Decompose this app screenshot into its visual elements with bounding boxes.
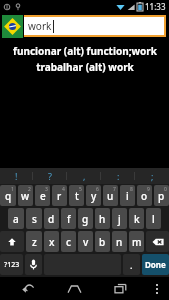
staticText: p (158, 189, 165, 203)
staticText: o (141, 189, 148, 203)
staticText: s (32, 212, 37, 226)
button[interactable]: ? (33, 168, 67, 184)
button[interactable]: q (0, 185, 16, 206)
staticText: c (66, 235, 71, 249)
staticText: 9 (147, 186, 150, 193)
staticText: ?123 (4, 260, 20, 270)
button[interactable]: b (95, 231, 110, 252)
button[interactable]: z (26, 231, 42, 252)
button[interactable]: ! (0, 168, 33, 184)
button[interactable]: Home (60, 277, 89, 300)
staticText: 8 (130, 186, 133, 193)
button[interactable]: v (78, 231, 93, 252)
staticText: . (130, 259, 133, 271)
staticText: a (13, 212, 19, 226)
staticText: j (118, 212, 121, 226)
staticText: 7 (113, 186, 116, 193)
button[interactable]: , (67, 168, 101, 184)
button[interactable]: e (35, 185, 50, 206)
staticText: Done (145, 259, 166, 270)
staticText: g (82, 212, 89, 226)
staticText: 4 (62, 186, 65, 193)
staticText: y (91, 189, 97, 203)
staticText: ! (15, 170, 18, 182)
staticText: d (48, 212, 55, 226)
staticText: 2 (28, 186, 31, 193)
staticText: w (21, 189, 30, 203)
button[interactable]: Select language (0, 14, 24, 38)
button[interactable]: Recent apps (106, 277, 135, 300)
button[interactable]: o (137, 185, 152, 206)
staticText: m (132, 235, 142, 249)
button[interactable]: i (120, 185, 135, 206)
staticText: funcionar (alt) function;work (13, 44, 157, 58)
staticText: 6 (96, 186, 99, 193)
button[interactable]: Back (13, 277, 43, 300)
button[interactable]: h (95, 208, 110, 229)
staticText: x (49, 235, 55, 249)
staticText: v (83, 235, 89, 249)
staticText: 11:33 (145, 1, 166, 12)
staticText: z (32, 235, 37, 249)
button[interactable]: u (103, 185, 118, 206)
button[interactable]: j (112, 208, 127, 229)
button[interactable]: a (8, 208, 24, 229)
button[interactable]: g (78, 208, 93, 229)
staticText: 3 (45, 186, 48, 193)
button[interactable]: Voice input (25, 254, 42, 275)
staticText: q (5, 189, 12, 203)
button[interactable]: f (61, 208, 76, 229)
button[interactable]: d (44, 208, 59, 229)
staticText: i (126, 189, 129, 203)
button[interactable]: t (69, 185, 84, 206)
staticText: work (28, 19, 52, 33)
button[interactable]: n (112, 231, 127, 252)
button[interactable]: l (146, 208, 161, 229)
button[interactable]: More options (148, 277, 165, 300)
button[interactable]: ?123 (0, 254, 23, 275)
staticText: b (99, 235, 106, 249)
staticText: ? (48, 170, 52, 182)
button[interactable]: s (26, 208, 42, 229)
staticText: k (134, 212, 140, 226)
button[interactable]: k (129, 208, 144, 229)
button[interactable]: . (123, 254, 140, 275)
staticText: trabalhar (alt) work (36, 60, 134, 74)
button[interactable]: w (18, 185, 33, 206)
staticText: n (116, 235, 123, 249)
staticText: u (107, 189, 114, 203)
staticText: 0 (164, 186, 167, 193)
button[interactable]: y (86, 185, 101, 206)
button[interactable]: x (44, 231, 59, 252)
button[interactable]: m (129, 231, 144, 252)
button[interactable]: : (101, 168, 135, 184)
button[interactable]: p (154, 185, 169, 206)
staticText: , (83, 170, 86, 182)
staticText: : (117, 170, 120, 182)
staticText: e (40, 189, 46, 203)
staticText: ; (151, 170, 154, 182)
staticText: f (67, 212, 71, 226)
button[interactable]: c (61, 231, 76, 252)
staticText: 1 (11, 186, 14, 193)
button[interactable]: ; (135, 168, 169, 184)
staticText: l (152, 212, 155, 226)
staticText: 5 (79, 186, 82, 193)
button[interactable]: r (52, 185, 67, 206)
staticText: t (75, 189, 79, 203)
button[interactable]: Backspace (146, 231, 169, 252)
staticText: r (57, 189, 62, 203)
button[interactable]: work (24, 15, 166, 37)
staticText: h (99, 212, 106, 226)
button[interactable]: Done (142, 254, 169, 275)
button[interactable]: Shift (0, 231, 24, 252)
